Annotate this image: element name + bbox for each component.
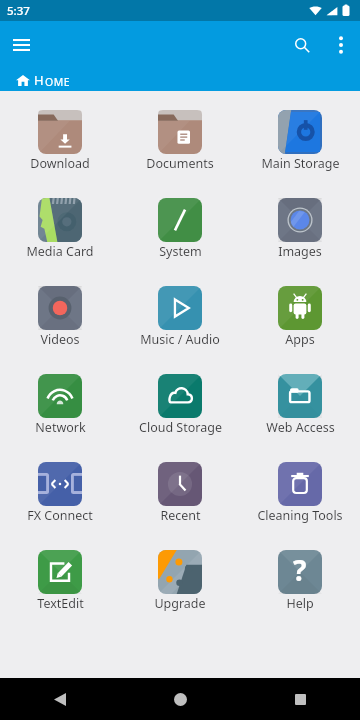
staticText: Main Storage: [261, 155, 340, 172]
button[interactable]: More options: [322, 26, 360, 64]
button[interactable]: Recent: [120, 462, 240, 550]
button[interactable]: Web Access: [240, 374, 360, 462]
button[interactable]: Home: [120, 678, 240, 720]
button[interactable]: Navigation menu: [2, 26, 40, 64]
button[interactable]: System: [120, 198, 240, 286]
button[interactable]: TextEdit: [0, 550, 120, 638]
staticText: 5:37: [7, 3, 30, 19]
button[interactable]: Media Card: [0, 198, 120, 286]
staticText: Apps: [285, 331, 315, 348]
staticText: ?: [293, 551, 307, 589]
staticText: Documents: [146, 155, 214, 172]
staticText: Videos: [40, 331, 80, 348]
button[interactable]: Recent apps: [240, 678, 360, 720]
staticText: Download: [30, 155, 90, 172]
staticText: FX Connect: [27, 507, 93, 524]
button[interactable]: Search: [282, 25, 322, 65]
staticText: Network: [35, 419, 86, 436]
staticText: Music / Audio: [140, 331, 220, 348]
staticText: Media Card: [26, 243, 94, 260]
button[interactable]: Upgrade: [120, 550, 240, 638]
staticText: Cleaning Tools: [257, 507, 343, 524]
button[interactable]: Back: [0, 678, 120, 720]
button[interactable]: Main Storage: [240, 110, 360, 198]
staticText: System: [159, 243, 202, 260]
staticText: H: [34, 71, 45, 89]
staticText: Help: [286, 595, 314, 612]
button[interactable]: Apps: [240, 286, 360, 374]
button[interactable]: Music / Audio: [120, 286, 240, 374]
staticText: Cloud Storage: [139, 419, 222, 436]
button[interactable]: Cloud Storage: [120, 374, 240, 462]
button[interactable]: ?: [240, 550, 360, 638]
staticText: TextEdit: [37, 595, 84, 612]
staticText: Images: [278, 243, 322, 260]
button[interactable]: Documents: [120, 110, 240, 198]
button[interactable]: Download: [0, 110, 120, 198]
button[interactable]: H: [0, 69, 360, 91]
button[interactable]: Network: [0, 374, 120, 462]
button[interactable]: Images: [240, 198, 360, 286]
staticText: Web Access: [266, 419, 335, 436]
button[interactable]: Videos: [0, 286, 120, 374]
staticText: OME: [45, 75, 71, 89]
button[interactable]: FX Connect: [0, 462, 120, 550]
button[interactable]: Cleaning Tools: [240, 462, 360, 550]
staticText: Upgrade: [154, 595, 206, 612]
staticText: Recent: [160, 507, 201, 524]
